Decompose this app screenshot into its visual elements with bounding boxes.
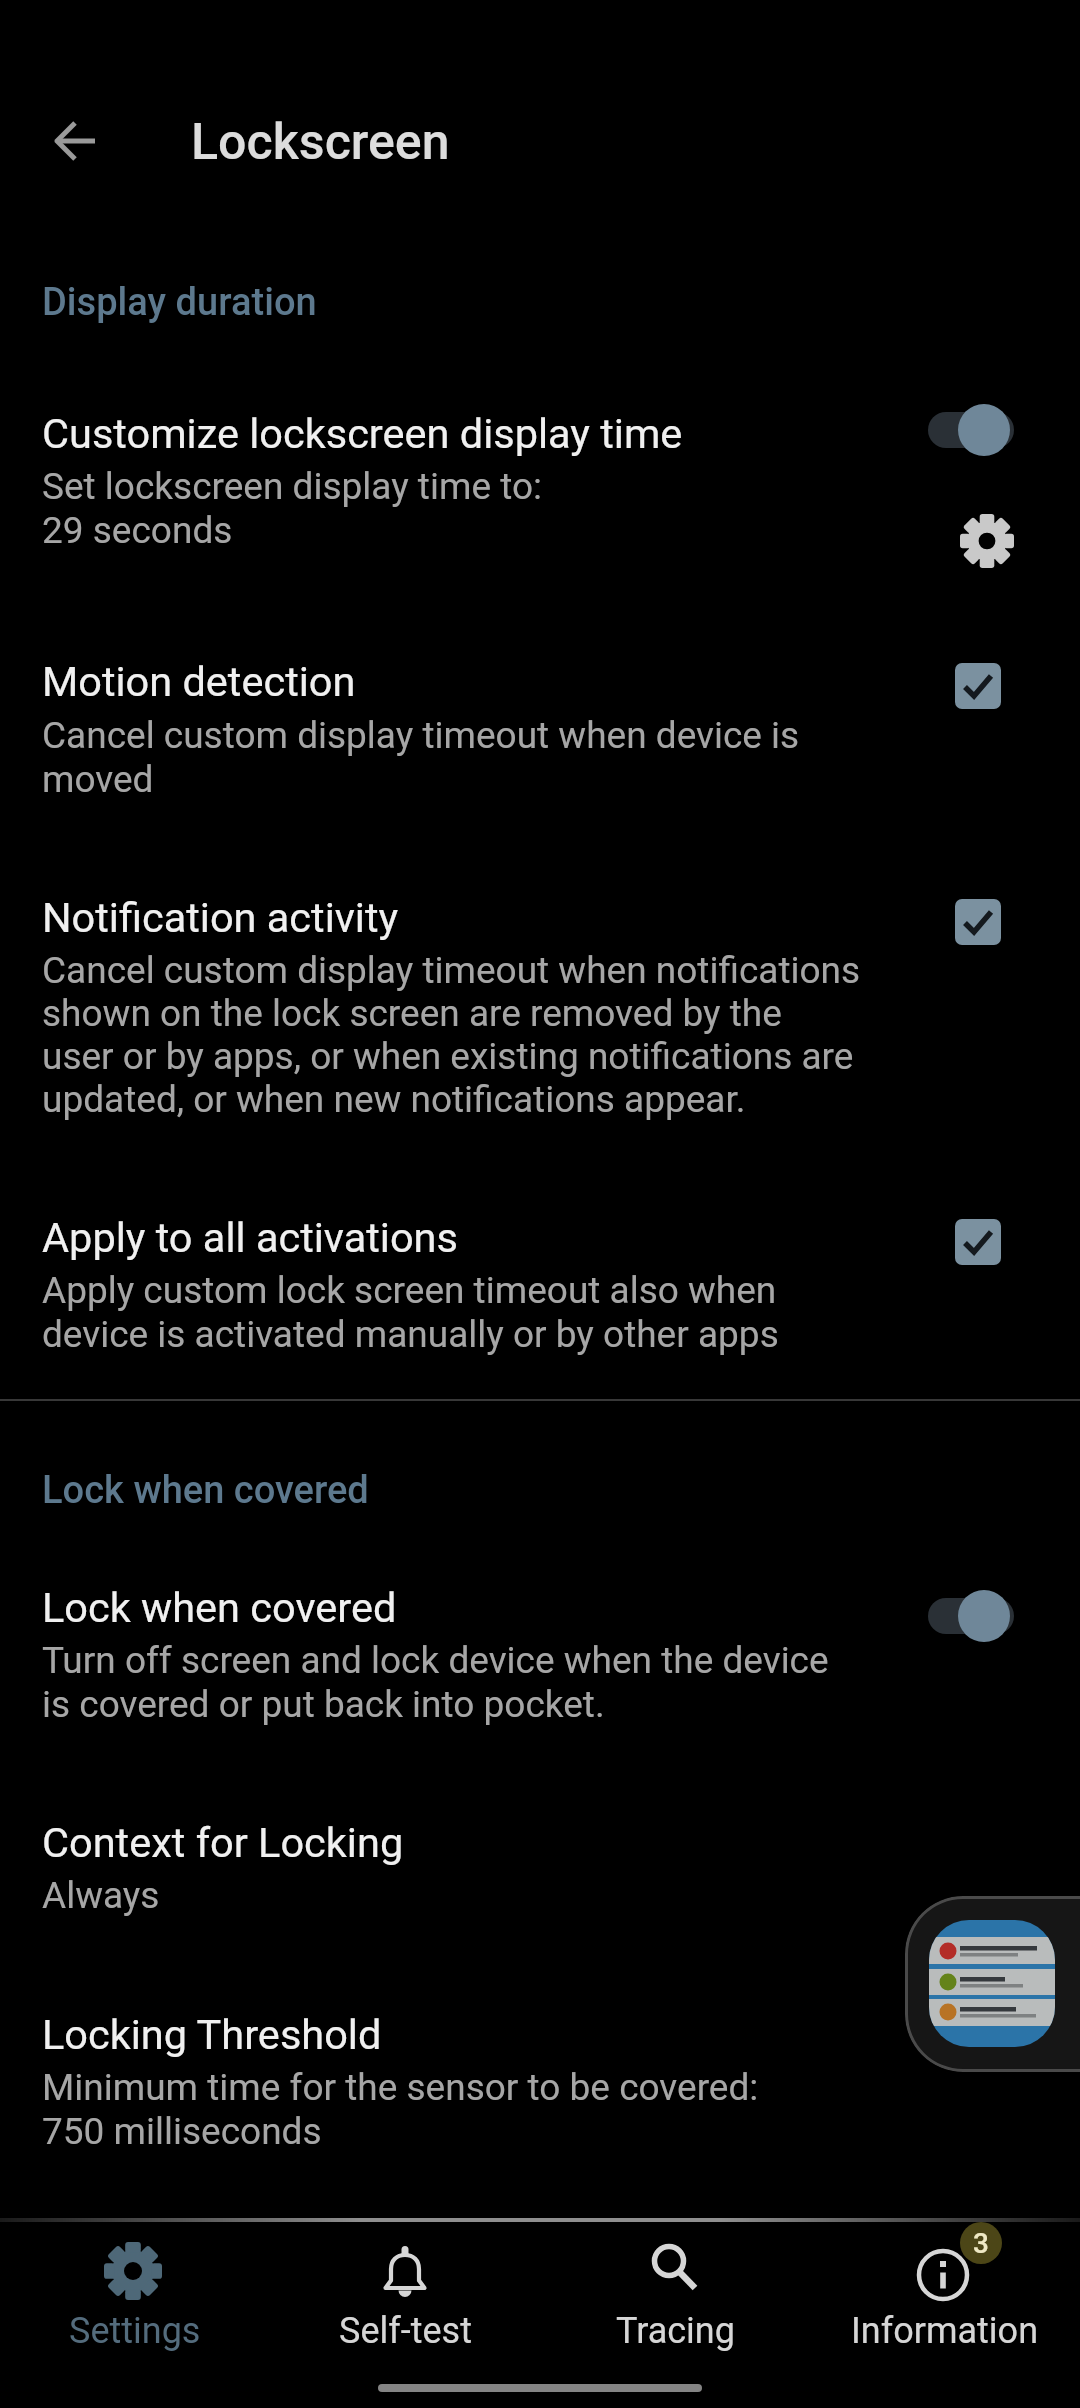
staticText: Context for Locking — [42, 1818, 404, 1867]
button[interactable] — [950, 505, 1024, 579]
staticText: Cancel custom display timeout when devic… — [42, 714, 800, 801]
staticText: Always — [42, 1874, 160, 1917]
staticText: Settings — [69, 2310, 201, 2352]
staticText: Lock when covered — [42, 1468, 369, 1513]
staticText: Notification activity — [42, 893, 399, 942]
button[interactable] — [0, 880, 1080, 1125]
staticText: Lockscreen — [191, 113, 450, 172]
staticText: 3 — [973, 2227, 989, 2260]
staticText: Motion detection — [42, 657, 356, 706]
staticText: Apply custom lock screen timeout also wh… — [42, 1269, 779, 1356]
button[interactable] — [40, 106, 110, 176]
button[interactable]: Settings — [0, 2222, 270, 2408]
button[interactable]: Tracing — [540, 2222, 810, 2408]
staticText: Minimum time for the sensor to be covere… — [42, 2066, 759, 2153]
button[interactable] — [0, 1200, 1080, 1365]
staticText: Lock when covered — [42, 1583, 397, 1632]
button[interactable]: Self-test — [270, 2222, 540, 2408]
button[interactable]: Information — [810, 2222, 1080, 2408]
staticText: Tracing — [616, 2310, 735, 2352]
staticText: Turn off screen and lock device when the… — [42, 1639, 829, 1726]
button[interactable] — [905, 1896, 1080, 2072]
staticText: Customize lockscreen display time — [42, 409, 683, 458]
staticText: Apply to all activations — [42, 1213, 458, 1262]
staticText: Display duration — [42, 280, 317, 325]
button[interactable] — [0, 1990, 1080, 2165]
button[interactable] — [0, 1795, 1080, 1930]
staticText: Locking Threshold — [42, 2010, 382, 2059]
staticText: Set lockscreen display time to: 29 secon… — [42, 465, 543, 552]
staticText: Information — [851, 2310, 1039, 2352]
button[interactable] — [0, 1560, 1080, 1735]
staticText: Self-test — [339, 2310, 472, 2352]
button[interactable] — [0, 385, 1080, 575]
staticText: Cancel custom display timeout when notif… — [42, 949, 861, 1121]
button[interactable] — [0, 645, 1080, 820]
